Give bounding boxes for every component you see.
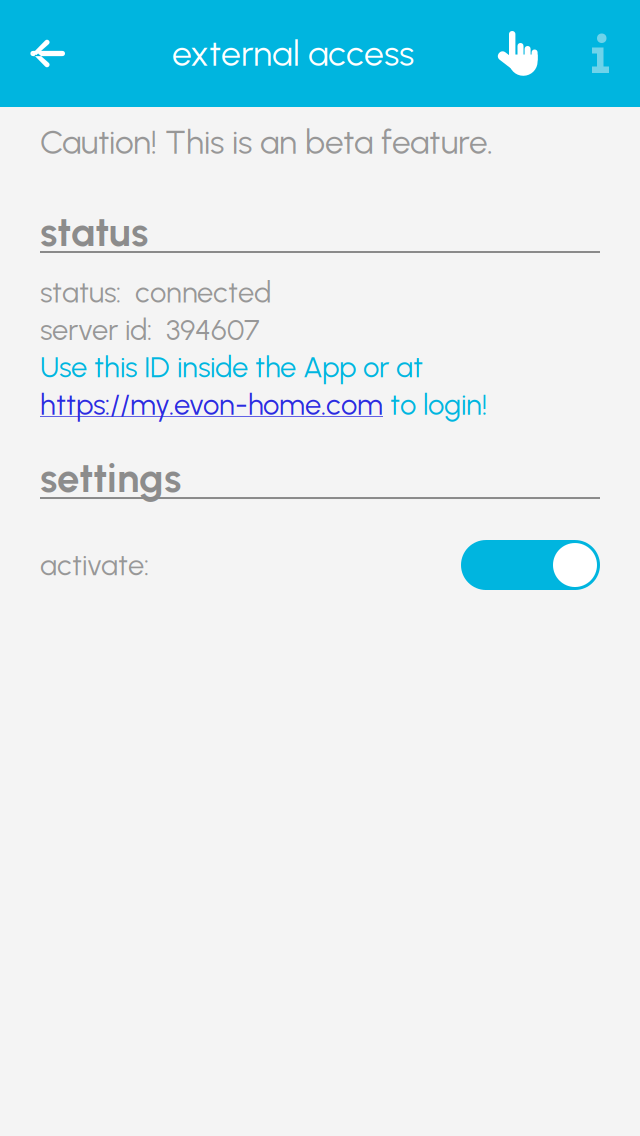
staticText: activate:	[40, 548, 149, 582]
staticText: Use this ID inside the App or at	[40, 350, 423, 385]
staticText: server id: 394607	[40, 312, 260, 347]
staticText: status	[40, 208, 148, 256]
staticText: status: connected	[40, 275, 271, 310]
button[interactable]: Back	[0, 0, 95, 107]
staticText: external access	[172, 32, 414, 75]
staticText: Caution! This is an beta feature.	[40, 122, 493, 162]
staticText: settings	[40, 454, 181, 502]
staticText: https://my.evon-home.com	[40, 387, 383, 422]
button[interactable]: Touch mode	[475, 0, 561, 107]
staticText: to login!	[383, 387, 487, 422]
button[interactable]: activate	[461, 540, 600, 590]
button[interactable]: Info	[561, 0, 640, 107]
